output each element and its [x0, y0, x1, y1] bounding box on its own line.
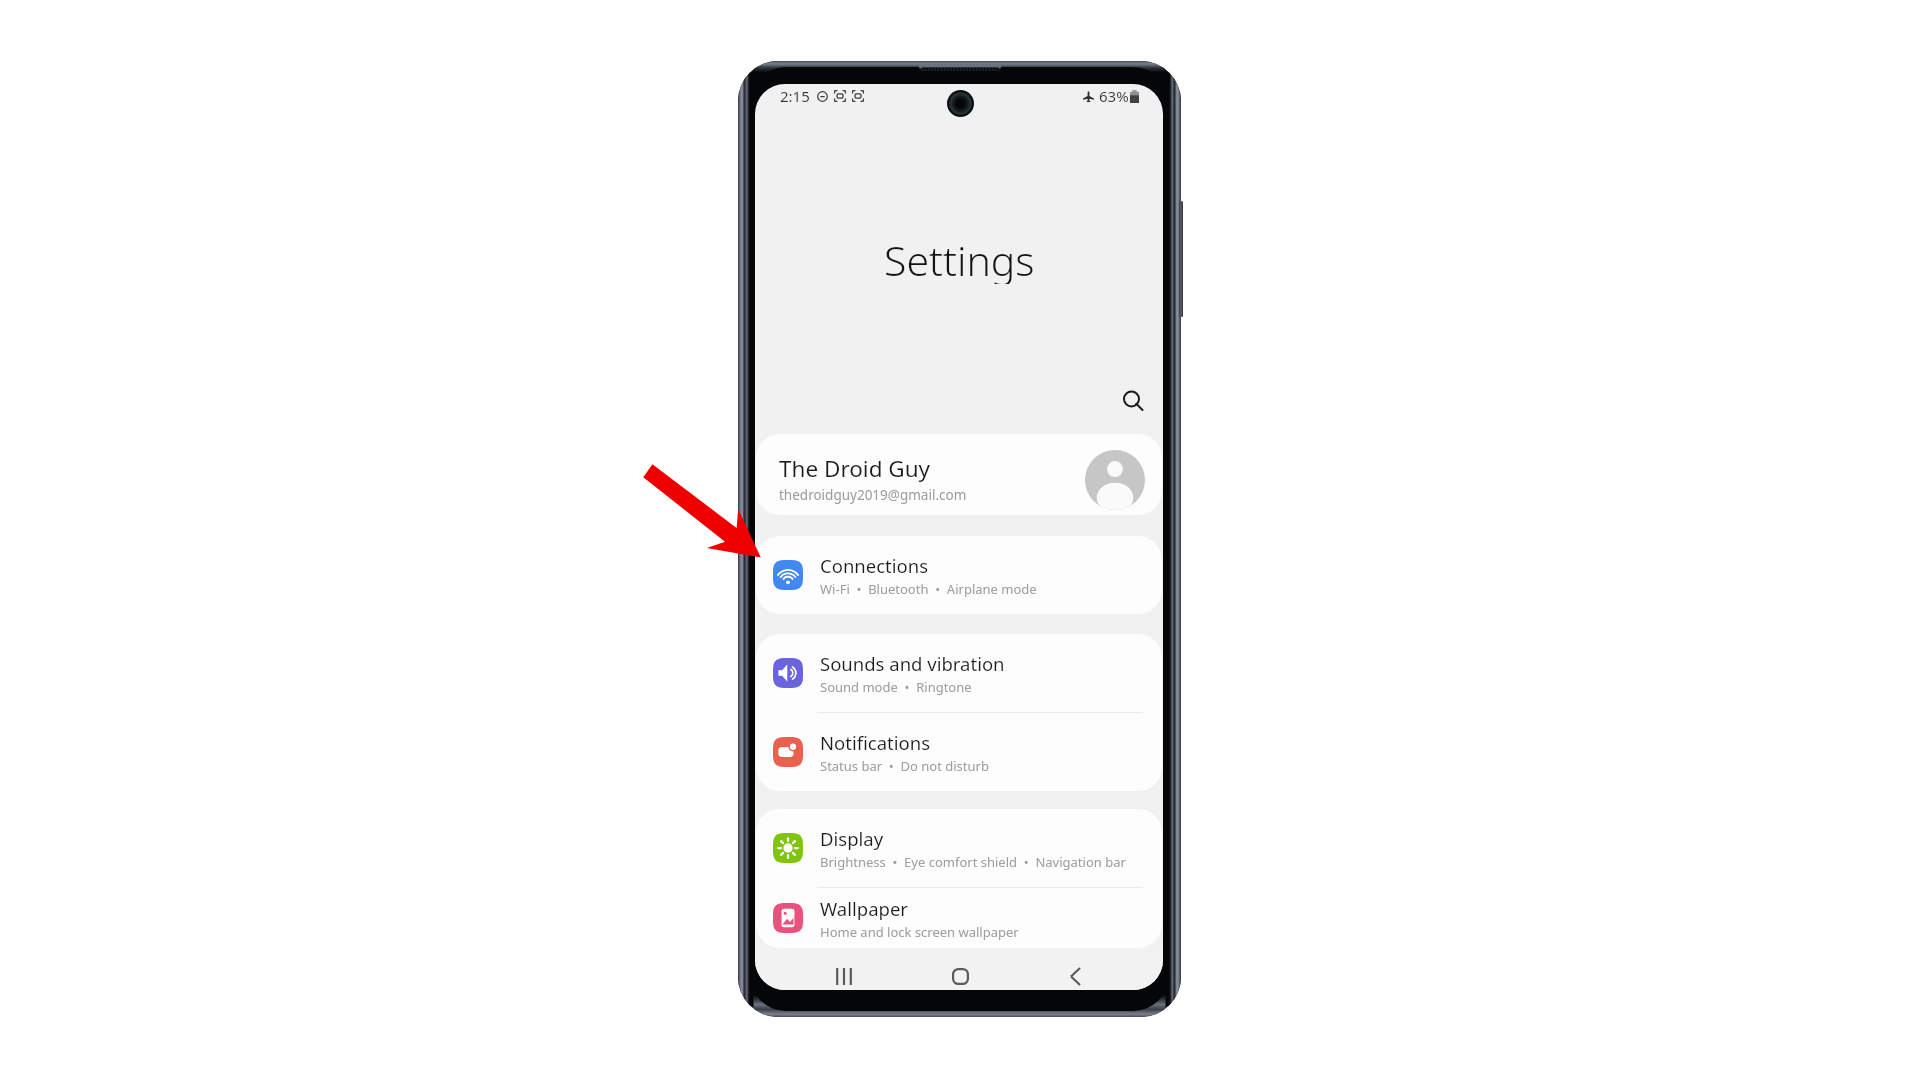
button[interactable]: Wallpaper: [756, 888, 1162, 948]
staticText: thedroidguy2019@gmail.com: [779, 486, 967, 504]
staticText: Settings: [884, 232, 1035, 284]
staticText: Display: [820, 826, 884, 851]
button[interactable]: Search: [1112, 380, 1154, 422]
button[interactable]: Sounds and vibration: [756, 634, 1162, 712]
button[interactable]: The Droid Guy: [756, 434, 1162, 515]
button[interactable]: Back: [1053, 955, 1097, 990]
staticText: 2:15: [780, 86, 810, 106]
button[interactable]: Display: [756, 809, 1162, 887]
button[interactable]: Recent apps: [822, 955, 866, 990]
staticText: Home and lock screen wallpaper: [820, 923, 1019, 941]
button[interactable]: Connections: [756, 536, 1162, 614]
staticText: Connections: [820, 553, 929, 578]
staticText: Status bar • Do not disturb: [820, 757, 989, 775]
staticText: Sound mode • Ringtone: [820, 678, 972, 696]
staticText: Notifications: [820, 730, 931, 755]
staticText: Wi-Fi • Bluetooth • Airplane mode: [820, 580, 1037, 598]
staticText: Sounds and vibration: [820, 651, 1005, 676]
staticText: Wallpaper: [820, 896, 908, 921]
button[interactable]: Home: [938, 955, 982, 990]
staticText: 63%: [1099, 86, 1129, 106]
staticText: The Droid Guy: [779, 453, 931, 484]
staticText: Brightness • Eye comfort shield • Naviga…: [820, 853, 1126, 871]
button[interactable]: Notifications: [756, 713, 1162, 791]
